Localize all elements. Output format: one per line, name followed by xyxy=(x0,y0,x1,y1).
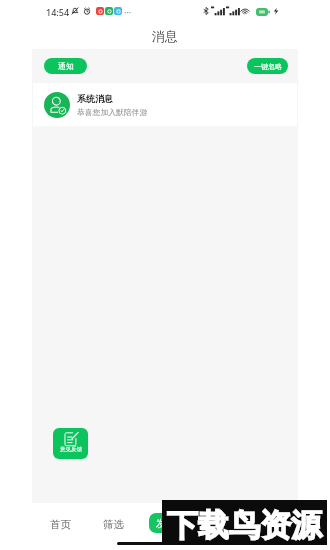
staticText: 筛选 xyxy=(103,518,124,531)
button[interactable]: 意见反馈 xyxy=(53,428,88,459)
staticText: 14:54 xyxy=(46,6,70,18)
staticText: 系统消息 xyxy=(77,93,113,104)
staticText: 意见反馈 xyxy=(60,446,82,453)
staticText: 消息 xyxy=(152,28,178,44)
staticText: 通知 xyxy=(58,61,74,71)
button[interactable]: 发 xyxy=(149,513,172,533)
staticText: 恭喜您加入默陪伴游 xyxy=(77,107,148,117)
staticText: ··· xyxy=(124,6,132,18)
staticText: 首页 xyxy=(50,518,71,531)
button[interactable]: 筛选 xyxy=(93,512,133,536)
button[interactable]: 一键忽略 xyxy=(247,58,288,74)
button[interactable]: 通知 xyxy=(44,58,87,74)
staticText: 发 xyxy=(156,517,166,530)
button[interactable]: 系统消息 xyxy=(33,83,297,126)
staticText: 下载鸟资源 xyxy=(167,506,322,545)
staticText: 一键忽略 xyxy=(254,62,282,71)
button[interactable]: 首页 xyxy=(40,512,80,536)
